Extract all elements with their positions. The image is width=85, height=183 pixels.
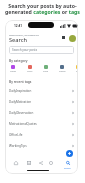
button[interactable]: DailyObservation xyxy=(5,108,78,117)
button[interactable]: Pets xyxy=(72,65,78,73)
staticText: OfficeLife xyxy=(9,133,23,137)
staticText: 12:41 xyxy=(14,24,23,28)
button[interactable]: WorkingTips xyxy=(5,141,78,150)
staticText: MotivationalQuotes xyxy=(9,122,37,126)
staticText: WorkingTips xyxy=(9,144,27,148)
staticText: By recent tags xyxy=(9,79,32,83)
button[interactable]: Search your posts xyxy=(9,46,74,54)
staticText: Search your posts xyxy=(12,48,38,52)
staticText: Pets xyxy=(76,70,78,73)
button[interactable]: DailyInspiration xyxy=(5,86,78,95)
button[interactable]: Camera xyxy=(48,160,54,166)
button[interactable]: OfficeLife xyxy=(5,130,78,139)
staticText: WEDNESDAY, OCTOBER 26 xyxy=(9,33,39,36)
staticText: Search your posts by auto- generated cat… xyxy=(5,2,80,16)
staticText: Search xyxy=(64,167,71,170)
staticText: Search xyxy=(9,36,27,44)
staticText: Family xyxy=(59,70,66,73)
staticText: Food xyxy=(43,70,49,73)
staticText: Travel xyxy=(10,70,17,73)
staticText: Work xyxy=(27,70,33,73)
button[interactable]: DailyMotivation xyxy=(5,97,78,106)
button[interactable]: Share xyxy=(38,160,44,166)
button[interactable]: Search xyxy=(65,160,71,166)
staticText: DailyInspiration xyxy=(9,89,32,93)
button[interactable]: Family xyxy=(56,65,68,73)
button[interactable]: Library xyxy=(26,160,32,166)
button[interactable]: Apps xyxy=(60,34,67,41)
button[interactable]: MotivationalQuotes xyxy=(5,119,78,128)
button[interactable]: Compose xyxy=(66,150,73,157)
staticText: By category xyxy=(9,58,28,62)
staticText: DailyMotivation xyxy=(9,100,32,104)
button[interactable]: Profile xyxy=(69,35,76,42)
button[interactable]: Food xyxy=(40,65,52,73)
staticText: DailyObservation xyxy=(9,111,34,115)
button[interactable]: Work xyxy=(24,65,36,73)
button[interactable]: Home xyxy=(13,160,19,166)
button[interactable]: Travel xyxy=(7,65,19,73)
